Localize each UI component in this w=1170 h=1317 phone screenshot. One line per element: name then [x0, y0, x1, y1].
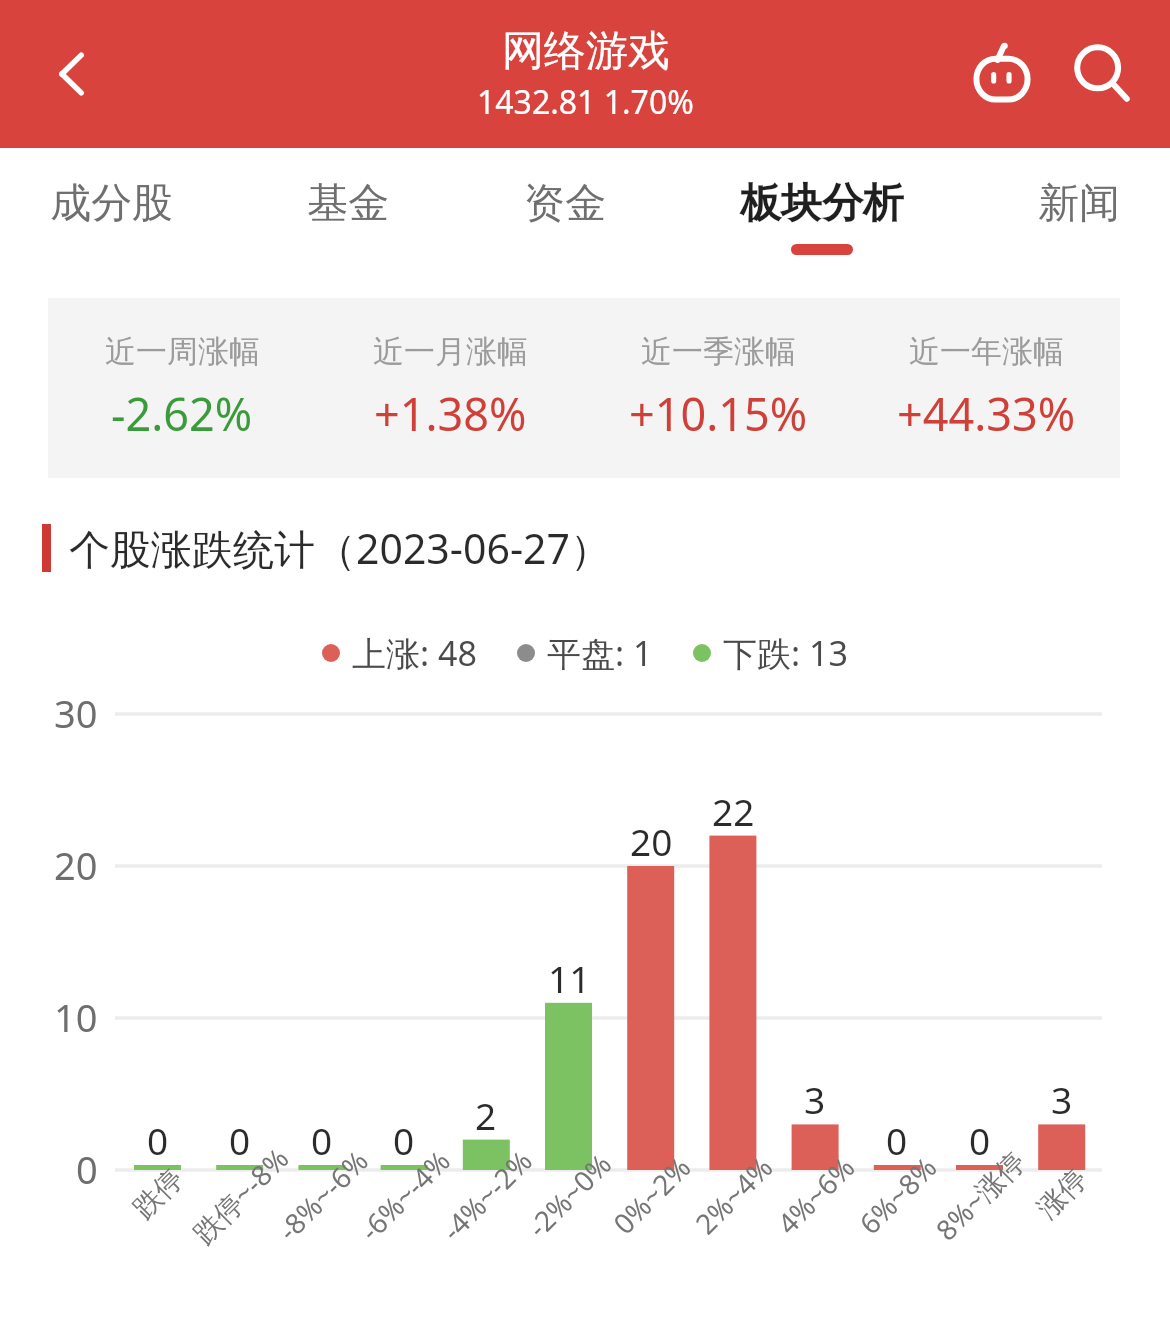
- staticText: -2%~0%: [519, 1145, 619, 1245]
- staticText: 涨停: [1030, 1161, 1094, 1226]
- button[interactable]: 近一年涨幅: [852, 332, 1120, 444]
- staticText: -4%~-2%: [433, 1142, 540, 1248]
- button[interactable]: 近一季涨幅: [584, 332, 852, 444]
- button[interactable]: 成分股: [36, 148, 187, 244]
- staticText: -8%~-6%: [269, 1142, 376, 1248]
- button[interactable]: 板块分析: [726, 148, 918, 255]
- staticText: 3: [804, 1074, 826, 1124]
- staticText: 跌停: [126, 1161, 190, 1226]
- button[interactable]: 个股涨跌统计（2023-06-27）: [42, 520, 612, 576]
- staticText: 0: [147, 1115, 169, 1165]
- staticText: 30: [54, 687, 98, 739]
- button[interactable]: 资金: [510, 148, 620, 244]
- staticText: 8%~涨停: [927, 1142, 1033, 1248]
- staticText: 个股涨跌统计（2023-06-27）: [69, 520, 612, 576]
- staticText: 网络游戏: [502, 25, 670, 78]
- staticText: 1432.81 1.70%: [477, 80, 694, 124]
- staticText: 10: [54, 991, 98, 1043]
- staticText: 平盘: 1: [547, 630, 653, 676]
- staticText: 22: [712, 786, 755, 836]
- staticText: 0%~2%: [604, 1148, 698, 1242]
- button[interactable]: Back: [26, 28, 118, 120]
- staticText: 新闻: [1038, 178, 1120, 230]
- button[interactable]: 近一月涨幅: [316, 332, 584, 444]
- staticText: 11: [548, 953, 591, 1003]
- staticText: -2.62%: [111, 383, 253, 444]
- staticText: 4%~6%: [768, 1148, 862, 1242]
- staticText: +10.15%: [629, 383, 808, 444]
- staticText: -6%~-4%: [351, 1142, 458, 1248]
- staticText: 0: [229, 1115, 251, 1165]
- staticText: +44.33%: [897, 383, 1076, 444]
- button[interactable]: 基金: [293, 148, 403, 244]
- staticText: 近一月涨幅: [373, 332, 528, 371]
- staticText: 成分股: [50, 178, 173, 230]
- staticText: 0: [969, 1115, 991, 1165]
- staticText: +1.38%: [374, 383, 527, 444]
- staticText: 资金: [524, 178, 606, 230]
- staticText: 6%~8%: [850, 1148, 944, 1242]
- staticText: 3: [1051, 1074, 1073, 1124]
- staticText: 0: [393, 1115, 415, 1165]
- button[interactable]: Search: [1052, 24, 1152, 124]
- staticText: 0: [76, 1143, 98, 1195]
- button[interactable]: 平盘: 1: [517, 630, 653, 676]
- button[interactable]: 新闻: [1024, 148, 1134, 244]
- staticText: 0: [886, 1115, 908, 1165]
- staticText: 20: [630, 816, 673, 866]
- staticText: 板块分析: [740, 178, 904, 230]
- staticText: 近一季涨幅: [641, 332, 796, 371]
- staticText: 近一周涨幅: [105, 332, 260, 371]
- staticText: 下跌: 13: [723, 630, 848, 676]
- staticText: 2: [475, 1090, 497, 1140]
- staticText: 基金: [307, 178, 389, 230]
- button[interactable]: 近一周涨幅: [48, 332, 316, 444]
- staticText: 2%~4%: [686, 1148, 780, 1242]
- staticText: 20: [54, 839, 98, 891]
- staticText: 0: [311, 1115, 333, 1165]
- staticText: 上涨: 48: [352, 630, 477, 676]
- staticText: 跌停~-8%: [184, 1139, 297, 1251]
- button[interactable]: 下跌: 13: [693, 630, 848, 676]
- button[interactable]: AI assistant: [952, 24, 1052, 124]
- button[interactable]: 上涨: 48: [322, 630, 477, 676]
- staticText: 近一年涨幅: [909, 332, 1064, 371]
